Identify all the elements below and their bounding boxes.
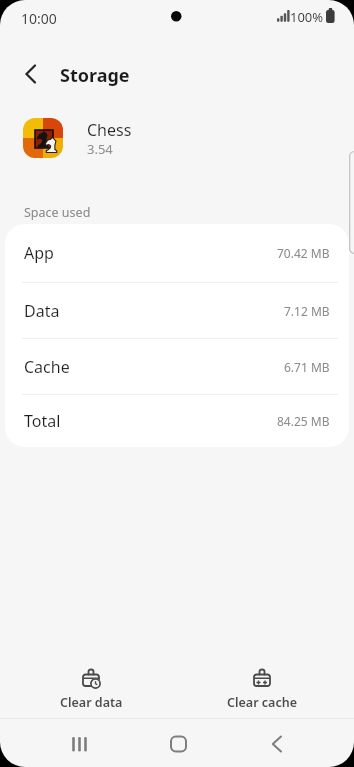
staticText: Storage — [60, 63, 130, 88]
staticText: 84.25 MB — [277, 413, 330, 429]
staticText: Cache — [24, 356, 70, 378]
staticText: App — [24, 242, 54, 264]
staticText: Space used — [24, 204, 91, 221]
staticText: 70.42 MB — [277, 245, 330, 261]
button[interactable]: Total — [5, 395, 349, 447]
staticText: 7.12 MB — [284, 303, 330, 319]
button[interactable] — [255, 722, 299, 766]
staticText: Total — [24, 410, 61, 432]
button[interactable]: App — [5, 224, 349, 282]
staticText: 10:00 — [21, 9, 57, 28]
staticText: Data — [24, 300, 60, 322]
staticText: 100% — [290, 8, 324, 26]
button[interactable] — [57, 722, 101, 766]
staticText: Clear data — [60, 694, 123, 711]
button[interactable]: Clear cache — [222, 665, 302, 715]
staticText: 6.71 MB — [284, 359, 330, 375]
button[interactable] — [10, 52, 54, 96]
staticText: 3.54 — [87, 140, 113, 158]
staticText: Chess — [87, 119, 132, 141]
button[interactable] — [156, 722, 200, 766]
button[interactable]: Cache — [5, 339, 349, 394]
button[interactable]: Data — [5, 283, 349, 338]
button[interactable]: Clear data — [51, 665, 131, 715]
staticText: Clear cache — [227, 694, 297, 711]
